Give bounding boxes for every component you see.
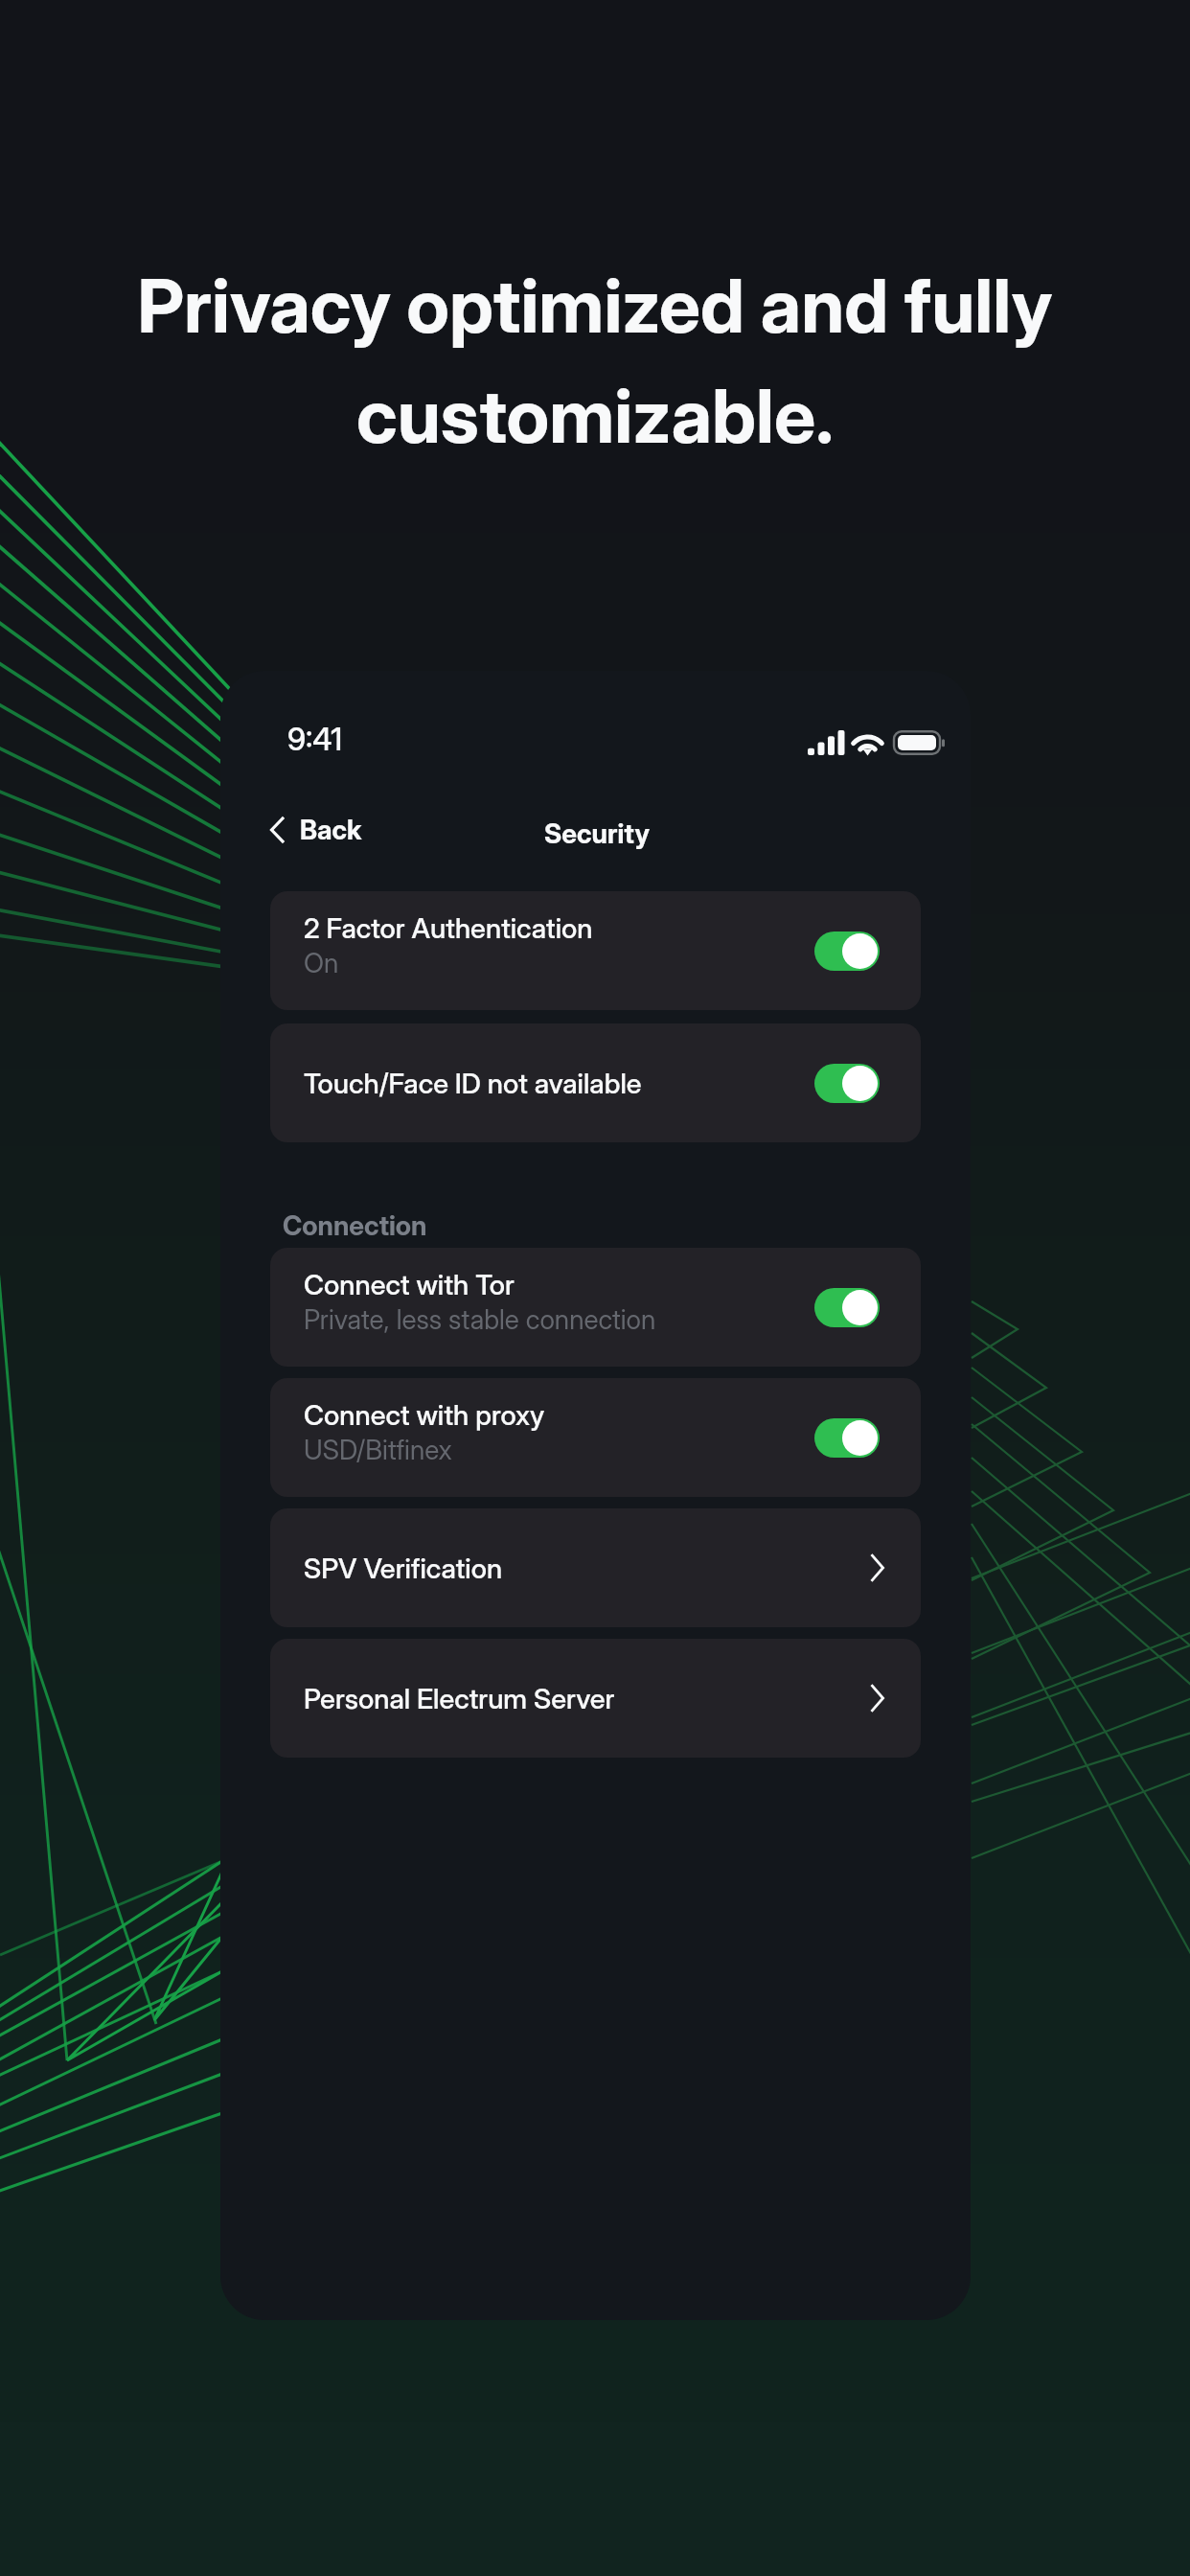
button[interactable]: 2 Factor Authentication (270, 891, 921, 1010)
staticText: Touch/Face ID not available (304, 1067, 642, 1100)
staticText: On (304, 947, 339, 979)
button[interactable]: SPV Verification (270, 1508, 921, 1627)
button[interactable]: Connect with proxy (270, 1378, 921, 1497)
staticText: Privacy optimized and fully customizable… (67, 261, 1123, 461)
staticText: SPV Verification (304, 1552, 503, 1585)
button[interactable]: Back (255, 799, 378, 861)
staticText: Connect with Tor (304, 1268, 515, 1301)
button[interactable]: Toggle Connect with Tor (814, 1288, 880, 1327)
staticText: 2 Factor Authentication (304, 911, 593, 945)
button[interactable]: Toggle Connect with proxy (814, 1418, 880, 1458)
staticText: Security (544, 817, 651, 850)
button[interactable]: Touch/Face ID not available (270, 1023, 921, 1142)
staticText: Connection (283, 1209, 427, 1242)
other: Open Personal Electrum Server (871, 1685, 884, 1712)
staticText: Personal Electrum Server (304, 1682, 615, 1715)
staticText: Connect with proxy (304, 1398, 545, 1432)
staticText: 9:41 (287, 721, 343, 758)
staticText: Back (300, 814, 362, 846)
button[interactable]: Toggle 2 Factor Authentication (814, 931, 880, 971)
button[interactable]: Toggle Touch/Face ID not available (814, 1064, 880, 1103)
staticText: USD/Bitfinex (304, 1434, 452, 1466)
button[interactable]: Connect with Tor (270, 1248, 921, 1367)
staticText: Private, less stable connection (304, 1303, 656, 1336)
button[interactable]: Personal Electrum Server (270, 1639, 921, 1758)
other: Open SPV Verification (871, 1554, 884, 1581)
